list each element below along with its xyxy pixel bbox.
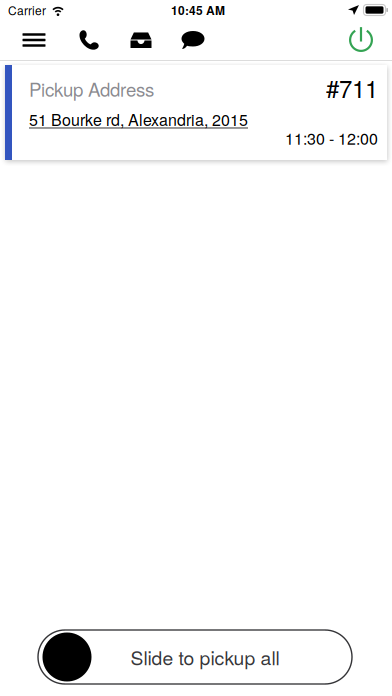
staticText: Carrier (8, 1, 46, 19)
staticText: 51 Bourke rd, Alexandria, 2015 (29, 108, 248, 130)
button[interactable]: Inbox (110, 20, 172, 60)
button[interactable]: Pickup Address (5, 65, 387, 160)
button[interactable]: Slide to pickup all (38, 630, 352, 684)
staticText: 11:30 - 12:00 (285, 126, 378, 149)
staticText: 10:45 AM (171, 1, 225, 19)
staticText: Slide to pickup all (130, 643, 279, 671)
button[interactable]: Menu (0, 20, 68, 60)
button[interactable]: Messages (172, 20, 214, 60)
staticText: #711 (326, 70, 378, 105)
button[interactable]: Call (68, 20, 110, 60)
staticText: Pickup Address (29, 75, 154, 102)
button[interactable]: Power (330, 20, 392, 60)
